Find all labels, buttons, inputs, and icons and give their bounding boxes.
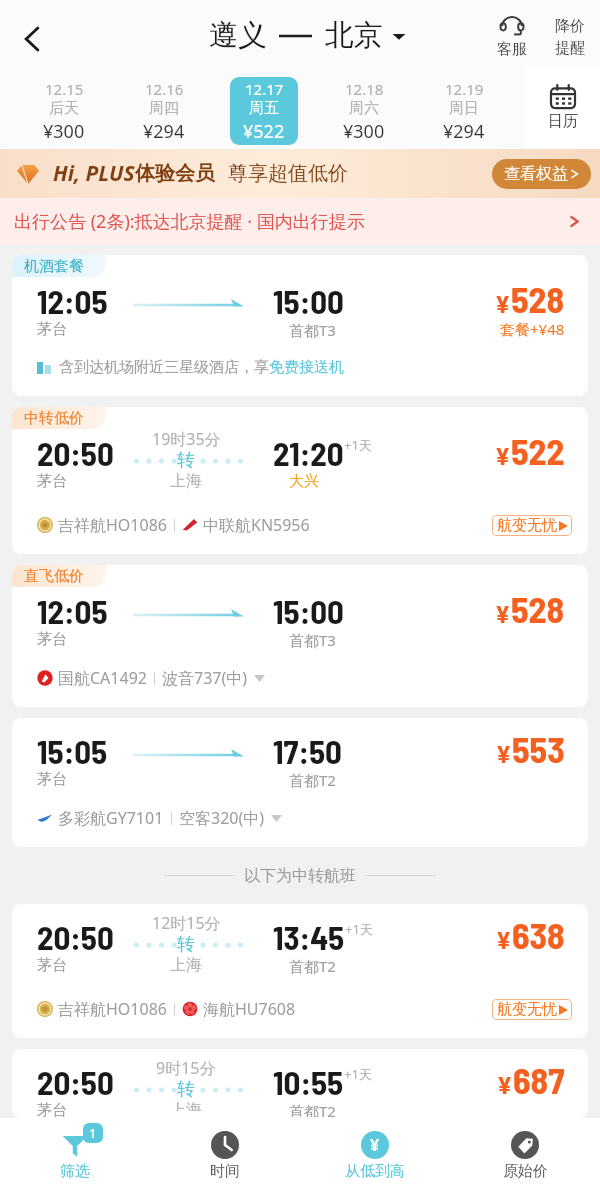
button[interactable]: 20:50 (12, 1049, 588, 1118)
staticText: 免费接送机 (269, 358, 344, 377)
staticText: 首都T2 (289, 956, 336, 976)
button[interactable]: Back (8, 15, 56, 63)
staticText: 首都T3 (289, 630, 336, 650)
staticText: ¥300 (343, 119, 385, 144)
button[interactable]: 机酒套餐 (12, 255, 588, 396)
staticText: 15:00 (273, 281, 344, 321)
staticText: 上海 (170, 1100, 202, 1111)
button[interactable]: 降价 (540, 17, 600, 58)
staticText: 国航CA1492 (58, 667, 147, 689)
staticText: 机酒套餐 (24, 257, 84, 276)
staticText: 吉祥航HO1086 (58, 514, 167, 536)
staticText: 12.19 (445, 79, 484, 99)
staticText: 13:45 (273, 917, 345, 957)
staticText: 中转低价 (24, 409, 84, 428)
staticText: 522 (511, 429, 565, 472)
button[interactable]: 时间 (150, 1131, 300, 1181)
staticText: 波音737(中) (162, 667, 248, 689)
button[interactable]: 直飞低价 (12, 565, 588, 707)
staticText: 12时15分 (152, 912, 221, 934)
staticText: 15:00 (273, 591, 344, 631)
staticText: 转 (177, 1078, 195, 1101)
staticText: 海航HU7608 (203, 998, 296, 1020)
staticText: 中联航KN5956 (203, 514, 310, 536)
staticText: 周五 (249, 99, 279, 118)
staticText: 553 (512, 727, 565, 770)
staticText: ¥294 (143, 119, 185, 144)
staticText: ¥ (495, 288, 511, 318)
staticText: 空客320(中) (179, 807, 265, 829)
button[interactable]: 日历 (525, 67, 600, 149)
staticText: 航变无忧 (497, 1000, 557, 1019)
button[interactable]: 12.17 (230, 77, 298, 145)
staticText: ¥294 (443, 119, 485, 144)
button[interactable]: 航变无忧 (492, 515, 572, 536)
staticText: 茅台 (37, 472, 67, 491)
staticText: 17:50 (273, 731, 342, 771)
staticText: 20:50 (37, 917, 114, 957)
button[interactable]: ¥ (300, 1131, 450, 1181)
button[interactable]: 20:50 (12, 904, 588, 1038)
staticText: 客服 (497, 40, 527, 59)
staticText: ¥300 (43, 119, 85, 144)
staticText: 12.17 (245, 79, 284, 99)
staticText: +1天 (344, 1065, 372, 1083)
staticText: ¥ (496, 738, 512, 768)
staticText: 528 (511, 277, 565, 320)
button[interactable]: 12.19 (430, 77, 498, 145)
staticText: 638 (512, 913, 565, 956)
button[interactable]: 12.18 (330, 77, 398, 145)
staticText: 20:50 (37, 1062, 114, 1102)
staticText: 转 (177, 933, 195, 956)
staticText: 出行公告 (2条):抵达北京提醒 · 国内出行提示 (14, 209, 365, 234)
staticText: 提醒 (555, 39, 585, 58)
staticText: ¥522 (243, 119, 285, 144)
staticText: 筛选 (60, 1162, 90, 1181)
staticText: +1天 (344, 436, 372, 454)
staticText: 含到达机场附近三星级酒店，享 (59, 358, 269, 377)
staticText: 周六 (349, 99, 379, 118)
staticText: 套餐+¥48 (500, 319, 565, 339)
staticText: 茅台 (37, 1101, 67, 1117)
button[interactable]: 遵义 (209, 17, 406, 54)
button[interactable]: 12.16 (130, 77, 198, 145)
staticText: Hi, PLUS (53, 159, 135, 188)
staticText: 上海 (170, 471, 202, 491)
button[interactable]: 1 (0, 1131, 150, 1181)
staticText: 降价 (555, 17, 585, 36)
staticText: 茅台 (37, 630, 67, 649)
staticText: ¥ (370, 1134, 380, 1156)
staticText: 528 (511, 587, 565, 630)
staticText: 茅台 (37, 770, 67, 789)
button[interactable]: Hi, PLUS (0, 149, 600, 198)
staticText: 尊享超值低价 (228, 161, 348, 186)
staticText: 北京 (325, 17, 383, 54)
staticText: 12:05 (37, 281, 108, 321)
button[interactable]: 航变无忧 (492, 999, 572, 1020)
staticText: 以下为中转航班 (244, 866, 356, 886)
button[interactable]: 客服 (484, 16, 540, 59)
staticText: 上海 (170, 955, 202, 975)
button[interactable]: 查看权益 (492, 159, 591, 189)
staticText: 吉祥航HO1086 (58, 998, 167, 1020)
staticText: 航变无忧 (497, 516, 557, 535)
staticText: 转 (177, 449, 195, 472)
button[interactable]: 中转低价 (12, 407, 588, 554)
staticText: ¥ (495, 598, 511, 628)
staticText: 首都T2 (289, 1101, 336, 1117)
staticText: 周日 (449, 99, 479, 118)
staticText: 周四 (149, 99, 179, 118)
staticText: 后天 (49, 99, 79, 118)
staticText: ¥ (496, 924, 512, 954)
staticText: 遵义 (209, 17, 267, 54)
staticText: 12.16 (145, 79, 184, 99)
staticText: 时间 (210, 1162, 240, 1181)
button[interactable]: 12.15 (30, 77, 98, 145)
button[interactable]: 出行公告 (2条):抵达北京提醒 · 国内出行提示 (0, 198, 600, 245)
button[interactable]: 原始价 (450, 1131, 600, 1181)
staticText: 9时15分 (156, 1057, 216, 1079)
button[interactable]: 15:05 (12, 718, 588, 847)
staticText: 10:55 (273, 1062, 344, 1102)
staticText: 体验会员 (135, 161, 215, 186)
staticText: 12:05 (37, 591, 108, 631)
